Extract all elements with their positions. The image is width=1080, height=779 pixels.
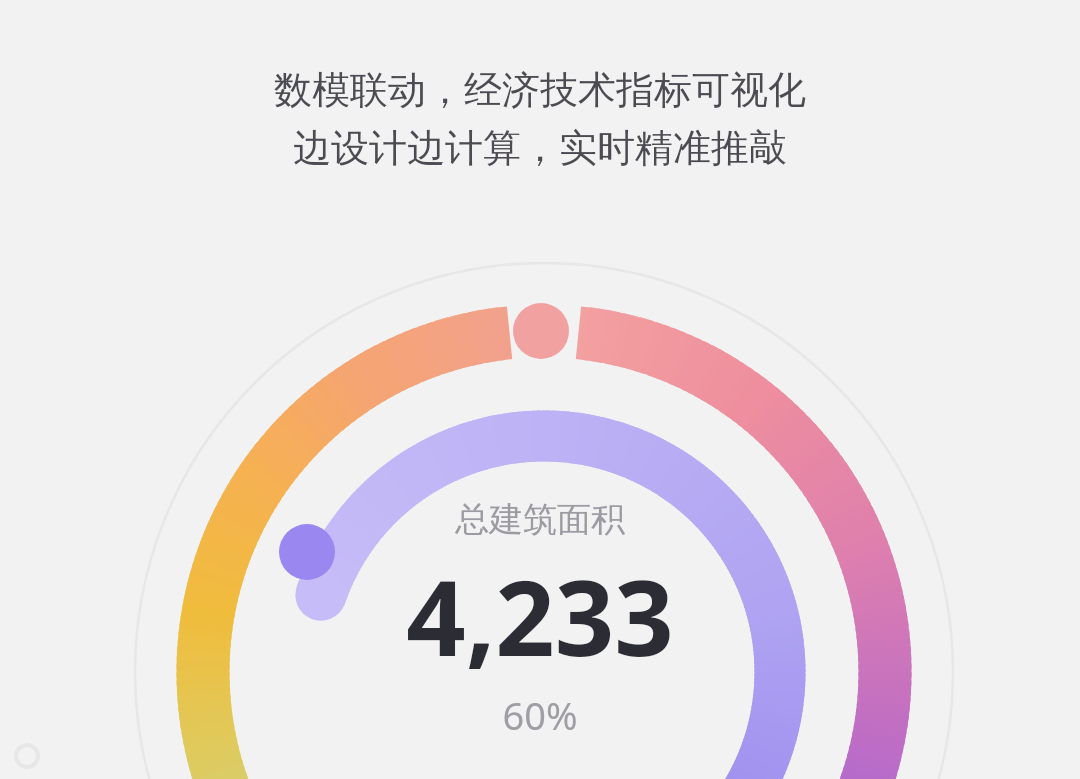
- staticText: 4,233: [406, 545, 674, 687]
- staticText: 总建筑面积: [455, 498, 625, 541]
- staticText: 数模联动，经济技术指标可视化: [274, 66, 806, 114]
- staticText: 60%: [502, 689, 578, 741]
- button[interactable]: 总建筑面积 4,233，完成度 60%: [0, 0, 1080, 779]
- staticText: 边设计边计算，实时精准推敲: [293, 124, 787, 172]
